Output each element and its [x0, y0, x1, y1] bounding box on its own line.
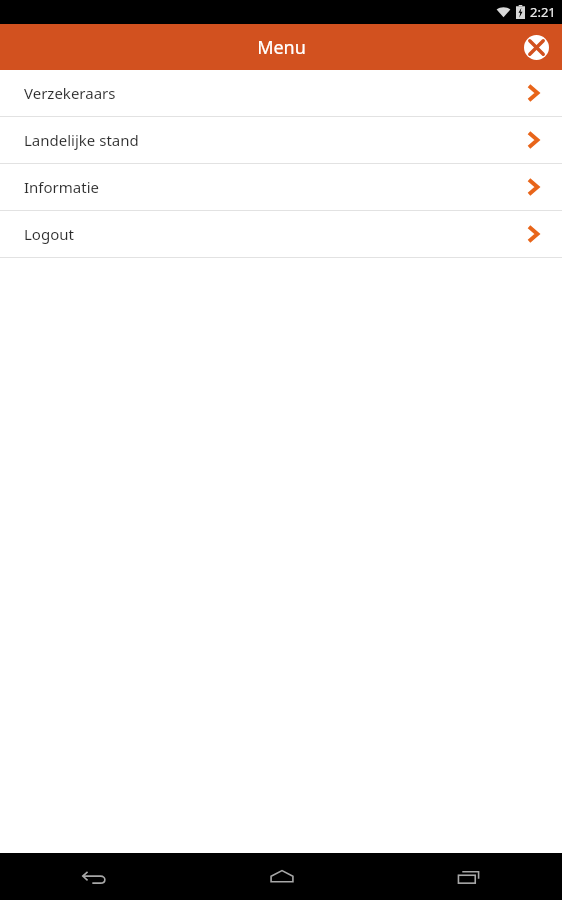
staticText: Landelijke stand: [24, 130, 139, 150]
button[interactable]: Logout: [0, 211, 562, 257]
staticText: Verzekeraars: [24, 83, 116, 103]
staticText: Menu: [257, 35, 306, 60]
staticText: 2:21: [530, 3, 556, 21]
button[interactable]: Home: [188, 853, 375, 900]
button[interactable]: Landelijke stand: [0, 117, 562, 163]
button[interactable]: Informatie: [0, 164, 562, 210]
button[interactable]: Back: [0, 853, 188, 900]
staticText: Logout: [24, 224, 74, 244]
button[interactable]: Close: [521, 32, 551, 62]
button[interactable]: Recent apps: [375, 853, 562, 900]
staticText: Informatie: [24, 177, 99, 197]
button[interactable]: Verzekeraars: [0, 70, 562, 116]
